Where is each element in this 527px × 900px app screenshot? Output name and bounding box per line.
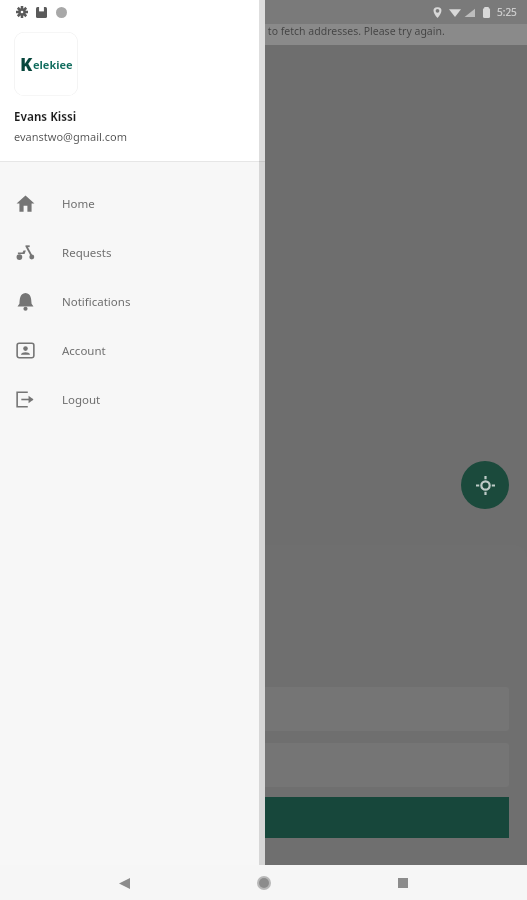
button[interactable]: PROCEED [18, 797, 509, 838]
button[interactable]: My location [461, 461, 509, 509]
button[interactable]: Home [249, 868, 279, 898]
staticText: Account [62, 343, 106, 359]
staticText: Unable to fetch addresses. Please try ag… [230, 24, 445, 38]
button[interactable]: PICKUP POINT [18, 687, 509, 731]
button[interactable]: Recents [388, 868, 418, 898]
button[interactable]: Requests [0, 228, 265, 277]
staticText: Home [62, 196, 95, 212]
staticText: Notifications [62, 294, 131, 310]
staticText: K [20, 52, 33, 77]
staticText: 5:25 [497, 5, 517, 19]
staticText: elekiee [33, 57, 73, 72]
staticText: Evans Kissi [14, 109, 77, 125]
button[interactable]: Back [109, 868, 139, 898]
button[interactable]: Home [0, 179, 265, 228]
button[interactable]: Logout [0, 375, 265, 424]
staticText: Logout [62, 392, 101, 408]
button[interactable]: Notifications [0, 277, 265, 326]
staticText: evanstwo@gmail.com [14, 129, 128, 144]
button[interactable]: Account [0, 326, 265, 375]
staticText: Requests [62, 245, 112, 261]
button[interactable]: DESTINATION POINT [18, 743, 509, 787]
